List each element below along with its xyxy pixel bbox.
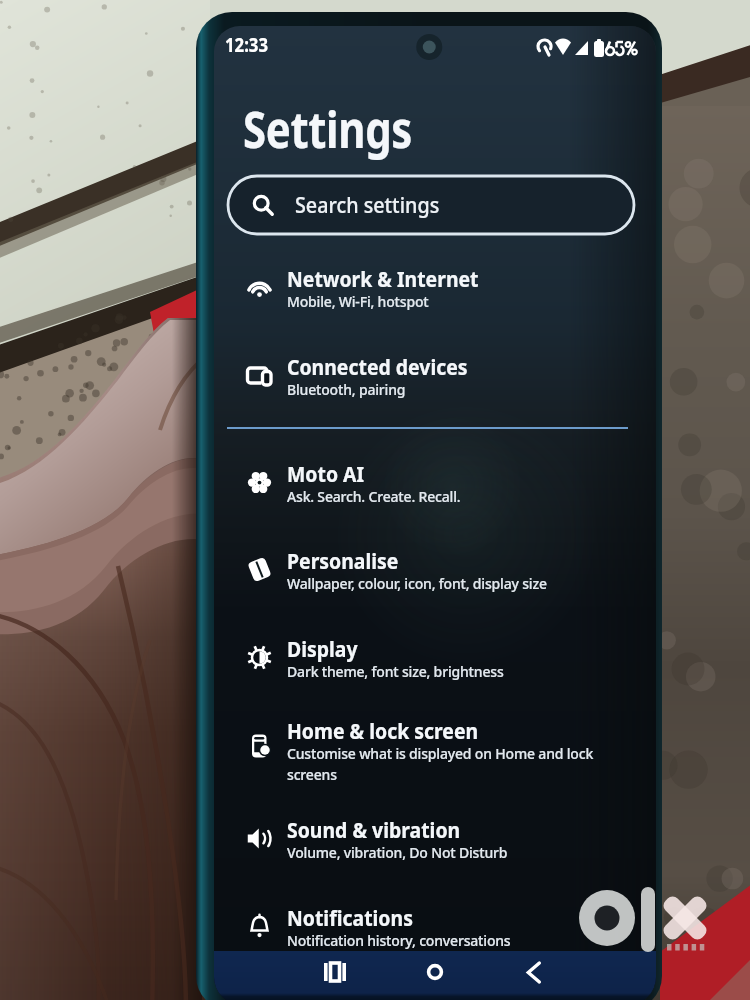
staticText: Wallpaper, colour, icon, font, display s… (287, 573, 595, 593)
button[interactable]: Recents (309, 946, 361, 998)
staticText: 12:33 (225, 31, 269, 59)
button[interactable]: Notifications (233, 897, 643, 957)
staticText: Dark theme, font size, brightness (287, 661, 595, 681)
staticText: Display (287, 634, 358, 664)
button[interactable]: Moto AI (233, 453, 643, 513)
staticText: Notification history, conversations (287, 930, 595, 950)
staticText: Settings (243, 94, 412, 163)
staticText: Personalise (287, 546, 399, 576)
button[interactable]: Back (507, 946, 559, 998)
staticText: Connected devices (287, 352, 468, 382)
button[interactable]: Network & Internet (233, 258, 643, 318)
staticText: Ask. Search. Create. Recall. (287, 486, 595, 506)
button[interactable]: Home (409, 946, 461, 998)
button[interactable]: Sound & vibration (233, 809, 643, 869)
staticText: Moto AI (287, 459, 365, 489)
button[interactable]: Display (233, 628, 643, 688)
staticText: Sound & vibration (287, 815, 461, 845)
staticText: Volume, vibration, Do Not Disturb (287, 842, 595, 862)
staticText: Network & Internet (287, 264, 479, 294)
staticText: Customise what is displayed on Home and … (287, 743, 595, 785)
staticText: Mobile, Wi-Fi, hotspot (287, 291, 595, 311)
button[interactable]: Personalise (233, 540, 643, 600)
staticText: Bluetooth, pairing (287, 379, 595, 399)
button[interactable]: Search settings (228, 176, 634, 234)
staticText: Notifications (287, 903, 414, 933)
staticText: Search settings (295, 191, 440, 220)
button[interactable]: Connected devices (233, 346, 643, 406)
staticText: Home & lock screen (287, 716, 478, 746)
button[interactable]: Home & lock screen (233, 710, 643, 790)
